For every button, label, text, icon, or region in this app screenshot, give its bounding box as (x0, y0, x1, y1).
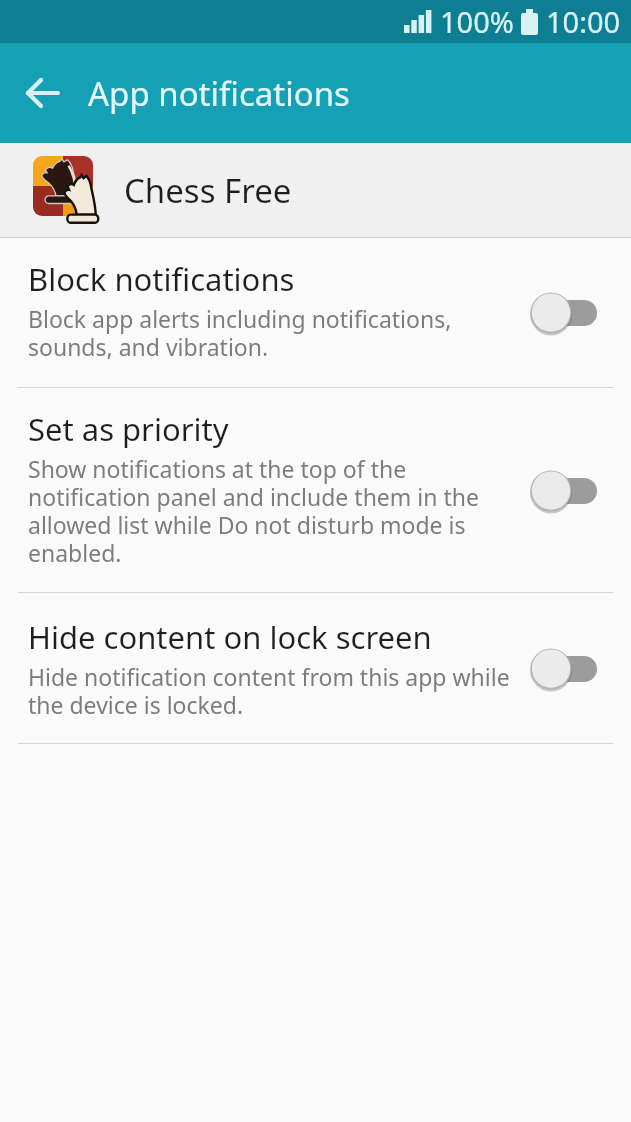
staticText: Chess Free (124, 168, 292, 213)
staticText: Block app alerts including notifications… (28, 303, 452, 363)
staticText: App notifications (88, 71, 350, 116)
staticText: Block notifications (28, 258, 295, 300)
button[interactable] (530, 291, 598, 335)
button[interactable]: Set as priority (0, 388, 631, 593)
staticText: Hide content on lock screen (28, 616, 432, 658)
button[interactable]: Chess Free (0, 143, 631, 237)
staticText: Show notifications at the top of the not… (28, 453, 479, 569)
button[interactable]: Block notifications (0, 238, 631, 388)
staticText: 10:00 (546, 2, 621, 41)
button[interactable] (530, 469, 598, 513)
staticText: Hide notification content from this app … (28, 661, 510, 721)
staticText: 100% (440, 2, 514, 41)
button[interactable] (530, 647, 598, 691)
button[interactable]: Hide content on lock screen (0, 593, 631, 744)
staticText: Set as priority (28, 408, 229, 450)
button[interactable] (0, 43, 86, 143)
